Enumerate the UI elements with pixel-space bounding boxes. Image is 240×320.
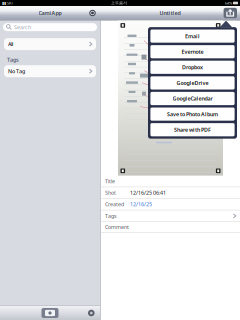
staticText: Save to Photo Album bbox=[167, 111, 218, 118]
staticText: Untitled bbox=[159, 9, 180, 17]
button[interactable]: Camera bbox=[41, 308, 58, 318]
button[interactable]: Title bbox=[101, 176, 240, 187]
staticText: GoogleDrive bbox=[176, 79, 208, 86]
staticText: Search bbox=[14, 24, 31, 31]
button[interactable]: Created bbox=[101, 199, 240, 210]
staticText: CamiApp bbox=[38, 9, 61, 17]
staticText: Tags bbox=[7, 56, 19, 63]
button[interactable]: All bbox=[4, 38, 96, 50]
staticText: Tags bbox=[105, 212, 117, 219]
button[interactable]: Shot bbox=[101, 187, 240, 199]
staticText: No Tag bbox=[8, 68, 25, 75]
staticText: Title bbox=[105, 178, 115, 185]
button[interactable]: No Tag bbox=[4, 65, 96, 77]
button[interactable]: Info bbox=[89, 9, 96, 16]
button[interactable]: Comment bbox=[101, 222, 240, 233]
staticText: 12/16/25 06:41 bbox=[130, 189, 166, 196]
staticText: 12/16/25 bbox=[130, 201, 152, 208]
button[interactable]: Evernote bbox=[150, 45, 235, 58]
button[interactable]: Settings bbox=[88, 309, 95, 317]
button[interactable]: GoogleDrive bbox=[150, 76, 235, 89]
staticText: Evernote bbox=[181, 48, 203, 55]
button[interactable]: Share with PDF bbox=[150, 123, 235, 136]
button[interactable]: Save to Photo Album bbox=[150, 107, 235, 121]
button[interactable]: Email bbox=[150, 29, 235, 43]
staticText: Dropbox bbox=[182, 64, 203, 71]
staticText: Email bbox=[185, 33, 200, 40]
button[interactable]: Tags bbox=[101, 210, 240, 222]
staticText: ▮▮ SKT bbox=[2, 0, 13, 6]
button[interactable]: GoogleCalendar bbox=[150, 92, 235, 105]
staticText: Comment bbox=[105, 223, 129, 231]
staticText: All bbox=[8, 41, 13, 48]
staticText: 64% bbox=[225, 0, 232, 6]
button[interactable]: Share bbox=[224, 8, 237, 18]
staticText: Shot bbox=[105, 189, 116, 196]
staticText: Created bbox=[105, 201, 124, 208]
staticText: 上두움서 bbox=[111, 0, 127, 5]
staticText: Share with PDF bbox=[174, 126, 211, 133]
button[interactable]: Dropbox bbox=[150, 61, 235, 74]
staticText: GoogleCalendar bbox=[172, 95, 212, 102]
